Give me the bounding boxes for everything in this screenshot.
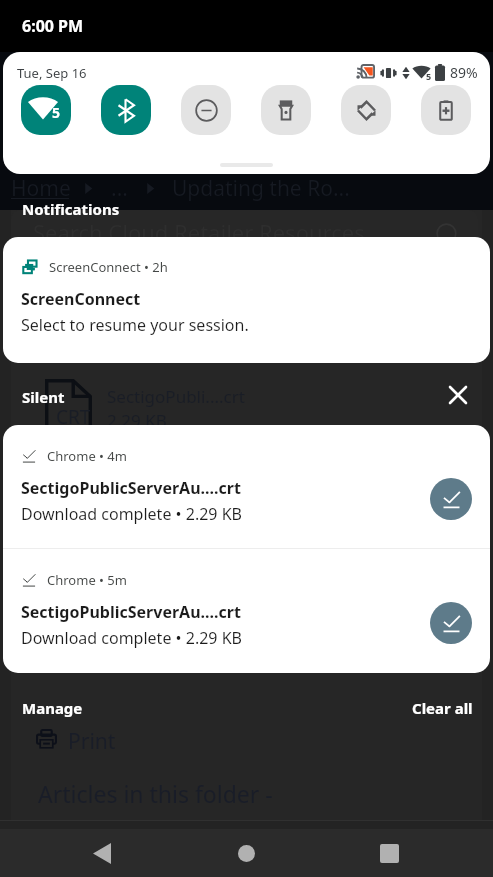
button[interactable]: Auto rotate [341, 85, 391, 135]
staticText: 5 [52, 103, 61, 122]
button[interactable]: Clear all [398, 693, 487, 723]
staticText: 89% [450, 63, 478, 82]
staticText: ScreenConnect • 2h [49, 258, 168, 276]
button[interactable]: Chrome • 4m [3, 425, 490, 548]
staticText: SectigoPublicServerAu....crt [21, 477, 241, 499]
button[interactable]: Manage [8, 693, 97, 723]
staticText: SectigoPublicServerAu....crt [21, 601, 241, 623]
button[interactable]: Open download [430, 478, 472, 520]
button[interactable]: Clear silent notifications [442, 379, 474, 411]
button[interactable]: Recent apps [366, 829, 413, 877]
staticText: 5 [426, 70, 432, 82]
button[interactable]: ScreenConnect • 2h [3, 237, 490, 363]
button[interactable]: Battery saver [421, 85, 471, 135]
button[interactable]: Bluetooth [101, 85, 151, 135]
staticText: Tue, Sep 16 [17, 64, 87, 82]
button[interactable]: Wi-Fi [21, 85, 71, 135]
button[interactable]: Flashlight [261, 85, 311, 135]
staticText: 2.29 KB [107, 409, 167, 432]
staticText: Chrome • 5m [47, 571, 127, 589]
staticText: Notifications [22, 199, 120, 219]
button[interactable]: Back [78, 829, 125, 877]
staticText: Home [11, 174, 71, 203]
button[interactable]: Home [223, 829, 270, 877]
staticText: CRT [56, 404, 91, 430]
staticText: Print [68, 727, 116, 756]
button[interactable]: Open download [430, 602, 472, 644]
staticText: Silent [22, 387, 65, 407]
staticText: Articles in this folder - [38, 778, 273, 809]
staticText: Download complete • 2.29 KB [21, 503, 242, 525]
staticText: 6:00 PM [22, 15, 84, 37]
staticText: Search Cloud Retailer Resources [33, 217, 365, 247]
staticText: Clear all [412, 698, 473, 718]
staticText: Updating the Ro... [172, 174, 350, 203]
staticText: Select to resume your session. [21, 314, 249, 336]
button[interactable]: Do not disturb [181, 85, 231, 135]
staticText: Manage [22, 698, 83, 718]
staticText: Chrome • 4m [47, 447, 127, 465]
staticText: Download complete • 2.29 KB [21, 627, 242, 649]
staticText: SectigoPubli....crt [107, 385, 245, 408]
button[interactable]: Chrome • 5m [3, 549, 490, 672]
staticText: ScreenConnect [21, 288, 141, 310]
